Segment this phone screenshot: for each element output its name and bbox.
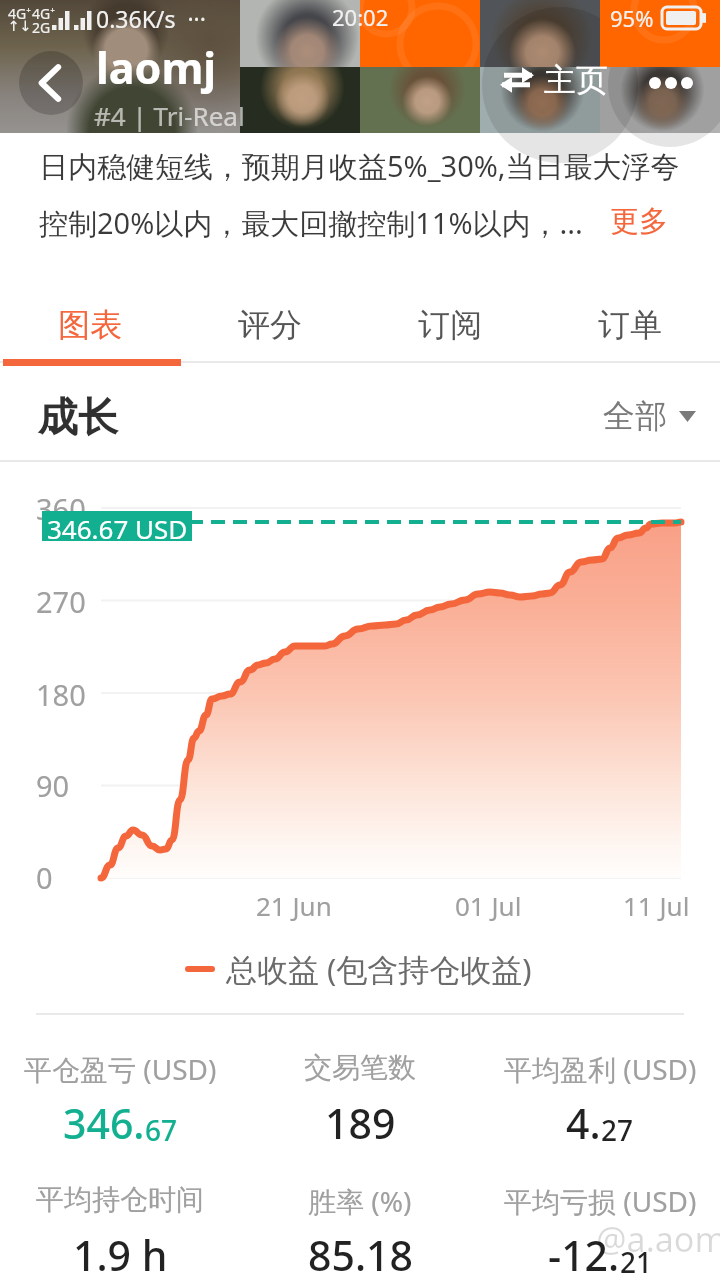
staticText: 平仓盈亏 (USD) <box>24 1050 217 1088</box>
staticText: laomj <box>96 38 217 97</box>
staticText: 20:02 <box>332 2 389 32</box>
staticText: 4G⁺ <box>8 4 31 23</box>
staticText: 订单 <box>598 305 662 345</box>
staticText: 全部 <box>603 396 667 436</box>
staticText: @a.aomj <box>596 1216 720 1262</box>
staticText: 2G <box>32 18 51 37</box>
staticText: 更多 <box>610 203 668 240</box>
staticText: 4G⁺ <box>32 4 55 23</box>
staticText: 11 Jul <box>623 888 690 923</box>
staticText: #4 | Tri-Real <box>94 98 245 133</box>
button[interactable]: 评分 <box>180 292 360 358</box>
staticText: 346.67 USD <box>47 511 188 541</box>
staticText: 189 <box>325 1095 396 1151</box>
staticText: 27 <box>601 1111 634 1149</box>
staticText: 主页 <box>544 60 608 100</box>
staticText: 平均盈利 (USD) <box>504 1050 697 1088</box>
staticText: 01 Jul <box>455 888 522 923</box>
button[interactable]: Back <box>19 51 83 115</box>
staticText: 21 Jun <box>256 888 332 923</box>
staticText: 67 <box>145 1111 178 1149</box>
staticText: 控制20%以内，最大回撤控制11%以内，... <box>39 203 583 243</box>
staticText: -12. <box>548 1227 620 1280</box>
staticText: ↑↓ <box>8 18 32 34</box>
staticText: 0 <box>36 858 53 897</box>
staticText: 交易笔数 <box>304 1050 416 1085</box>
staticText: 85.18 <box>308 1227 413 1280</box>
staticText: 订阅 <box>418 305 482 345</box>
staticText: 胜率 (%) <box>308 1182 412 1220</box>
staticText: 0.36K/s ··· <box>96 3 206 34</box>
button[interactable]: 全部 <box>603 396 696 436</box>
button[interactable]: 订阅 <box>360 292 540 358</box>
staticText: 95% <box>610 3 654 33</box>
staticText: 346. <box>63 1095 145 1151</box>
staticText: 成长 <box>38 392 118 442</box>
staticText: 270 <box>36 582 86 621</box>
staticText: 总收益 (包含持仓收益) <box>226 948 532 990</box>
staticText: 180 <box>36 675 86 714</box>
staticText: 平均持仓时间 <box>36 1182 204 1217</box>
staticText: 1.9 h <box>73 1227 168 1280</box>
button[interactable]: 订单 <box>540 292 720 358</box>
staticText: 评分 <box>238 305 302 345</box>
staticText: 平均亏损 (USD) <box>504 1182 697 1220</box>
button[interactable]: 更多 <box>610 203 668 240</box>
staticText: 90 <box>36 766 70 805</box>
button[interactable]: More options <box>640 52 702 114</box>
button[interactable]: 主页 <box>500 60 608 100</box>
staticText: 4. <box>566 1095 601 1151</box>
staticText: 图表 <box>58 305 122 345</box>
staticText: 日内稳健短线，预期月收益5%_30%,当日最大浮夸 <box>39 146 680 186</box>
staticText: 21 <box>620 1243 653 1280</box>
staticText: 360 <box>36 489 86 528</box>
button[interactable]: 图表 <box>0 292 180 358</box>
